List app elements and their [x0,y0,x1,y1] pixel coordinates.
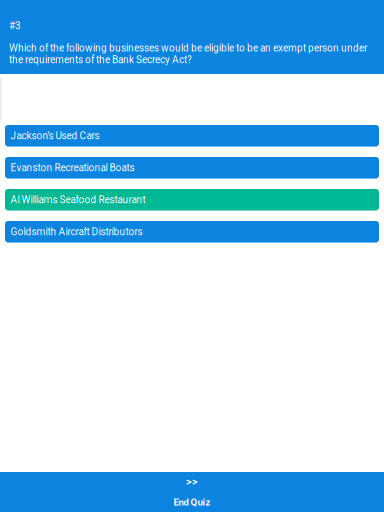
button[interactable]: Evanston Recreational Boats [5,157,379,178]
staticText: Jackson’s Used Cars [10,130,99,142]
staticText: Evanston Recreational Boats [10,162,134,174]
button[interactable]: Jackson’s Used Cars [5,125,379,146]
staticText: #3 [9,20,21,32]
button[interactable]: Next question [0,470,384,489]
staticText: Which of the following businesses would … [9,42,367,66]
staticText: >> [186,476,198,488]
button[interactable]: Al Williams Seafood Restaurant [5,189,379,210]
staticText: End Quiz [173,497,210,508]
staticText: Goldsmith Aircraft Distributors [10,226,142,238]
button[interactable]: Goldsmith Aircraft Distributors [5,221,379,242]
staticText: Al Williams Seafood Restaurant [10,194,145,206]
button[interactable]: End Quiz [0,489,384,512]
